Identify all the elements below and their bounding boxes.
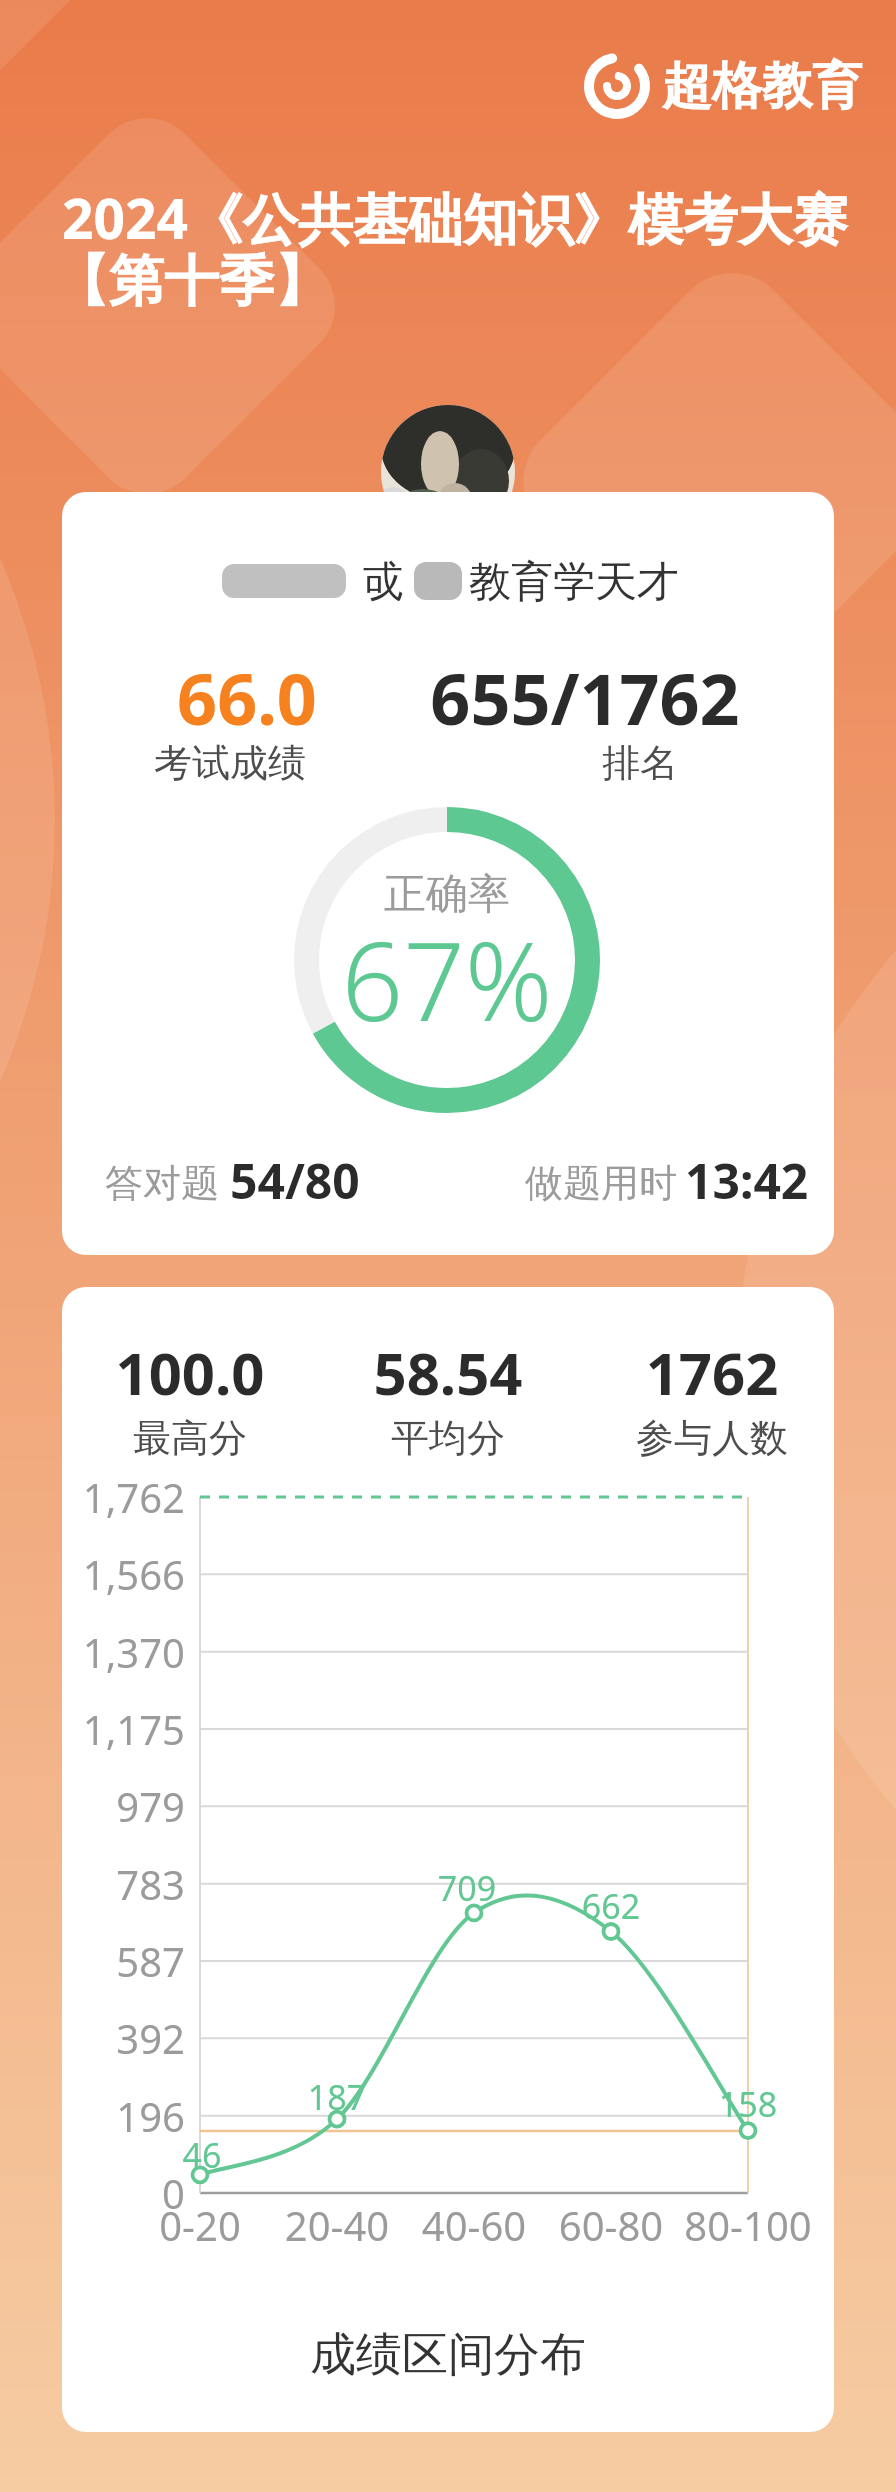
staticText: 正确率 [147,868,747,921]
staticText: 教育学天才 [274,556,834,609]
staticText: 0-20 [62,2198,500,2252]
staticText: 【第十季】 [54,247,856,316]
staticText: 662 [311,1883,834,1929]
staticText: 平均分 [148,1414,748,1462]
staticText: 1,762 [75,1470,185,1524]
staticText: 考试成绩 [62,739,530,787]
staticText: 1,175 [75,1702,185,1756]
staticText: 66.0 [62,650,547,745]
button[interactable] [578,54,874,118]
staticText: 979 [75,1779,185,1833]
staticText: 戓 [84,556,684,609]
staticText: 60-80 [311,2198,834,2252]
staticText: 成绩区间分布 [148,2326,748,2384]
staticText: 196 [75,2089,185,2143]
staticText: 100.0 [62,1333,490,1412]
staticText: 1762 [412,1333,834,1412]
staticText: 超格教育 [462,55,896,118]
staticText: 58.54 [148,1333,748,1412]
staticText: 54/80 [230,1148,430,1213]
staticText: 158 [448,2081,834,2127]
staticText: 0 [75,2166,185,2220]
staticText: 1,566 [75,1547,185,1601]
staticText: 587 [75,1934,185,1988]
button[interactable]: 100.0 [62,1287,834,2432]
staticText: 13:42 [685,1148,834,1213]
staticText: 392 [75,2011,185,2065]
staticText: 709 [167,1865,767,1911]
staticText: 783 [75,1857,185,1911]
staticText: 参与人数 [412,1414,834,1462]
button[interactable]: 戓 [62,492,834,1255]
staticText: 655/1762 [285,650,834,745]
staticText: 1,370 [75,1625,185,1679]
staticText: 排名 [340,739,834,787]
staticText: 187 [62,2074,637,2120]
staticText: 做题用时 [525,1159,725,1207]
staticText: 最高分 [62,1414,490,1462]
staticText: 20-40 [62,2198,637,2252]
staticText: 67% [147,906,747,1053]
staticText: 2024《公共基础知识》模考大赛 [62,180,864,255]
staticText: 40-60 [174,2198,774,2252]
staticText: 答对题 [105,1159,305,1207]
staticText: 80-100 [448,2198,834,2252]
staticText: 46 [62,2132,502,2178]
